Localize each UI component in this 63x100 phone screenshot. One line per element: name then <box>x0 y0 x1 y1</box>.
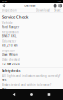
staticText: Dave Wilson <box>2 53 18 56</box>
staticText: Carrier <box>2 1 8 2</box>
staticText: 48,210 km <box>2 44 17 47</box>
staticText: 12 Mar 2024 <box>2 62 20 66</box>
staticText: Share <box>54 9 61 12</box>
staticText: Inspector <box>2 49 15 52</box>
staticText: Date checked <box>2 58 20 61</box>
button[interactable]: Print <box>53 3 57 8</box>
button[interactable]: Back <box>0 3 7 8</box>
button[interactable]: Recent apps <box>46 91 52 98</box>
staticText: Service Check <box>2 14 28 20</box>
staticText: Safety checks <box>2 69 20 73</box>
staticText: Overview <box>24 4 35 7</box>
button[interactable]: Back <box>11 91 17 98</box>
staticText: Download <box>36 9 50 12</box>
staticText: Registration <box>2 30 19 34</box>
staticText: BN67 XKL <box>2 34 16 38</box>
staticText: Ford Ranger <box>2 25 19 29</box>
staticText: Yes <box>2 78 6 82</box>
staticText: Yes <box>2 87 6 91</box>
button[interactable]: More options <box>57 3 63 8</box>
button[interactable]: Share <box>54 9 61 12</box>
button[interactable]: Download <box>36 9 50 12</box>
staticText: Odometer <box>2 40 16 43</box>
staticText: All lights and indicators working correc… <box>2 74 60 78</box>
button[interactable]: Home <box>28 91 35 98</box>
staticText: Brakes tested and within tolerance? <box>2 83 51 87</box>
staticText: Vehicle <box>2 21 13 25</box>
staticText: 12:40 <box>57 1 61 2</box>
staticText: Inspection <box>2 9 17 12</box>
